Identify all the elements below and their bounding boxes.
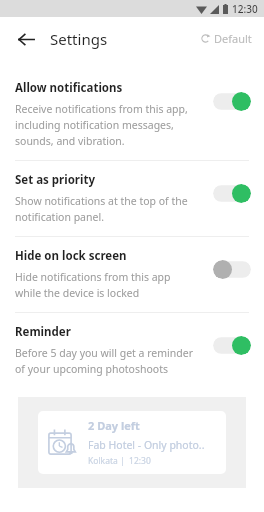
staticText: notification panel. xyxy=(15,210,104,224)
staticText: Hide notifications from this app xyxy=(15,270,171,284)
button[interactable]: Hide on lock screen xyxy=(0,237,264,312)
staticText: Settings xyxy=(50,29,108,49)
button[interactable]: 2 Day left xyxy=(38,411,226,474)
button[interactable]: On xyxy=(213,92,251,111)
button[interactable]: Set as priority xyxy=(0,161,264,236)
staticText: Allow notifications xyxy=(15,80,123,96)
staticText: Set as priority xyxy=(15,172,96,188)
button[interactable]: Allow notifications xyxy=(0,69,264,160)
staticText: including notification messages, xyxy=(15,118,174,132)
staticText: while the device is locked xyxy=(15,286,140,300)
staticText: Reminder xyxy=(15,324,71,340)
staticText: 2 Day left xyxy=(88,418,140,433)
button[interactable]: Back xyxy=(10,23,42,55)
staticText: 12:30 xyxy=(232,2,258,16)
staticText: Show notifications at the top of the xyxy=(15,194,188,208)
button[interactable]: On xyxy=(213,184,251,203)
staticText: Fab Hotel - Only photo.. xyxy=(88,438,205,452)
staticText: Before 5 day you will get a reminder xyxy=(15,346,193,360)
staticText: Default xyxy=(214,31,252,46)
staticText: Hide on lock screen xyxy=(15,248,127,264)
staticText: Kolkata | 12:30 xyxy=(88,455,151,467)
button[interactable]: Reminder xyxy=(0,313,264,388)
staticText: sounds, and vibration. xyxy=(15,134,125,148)
staticText: Receive notifications from this app, xyxy=(15,102,188,116)
button[interactable]: Off xyxy=(213,260,251,279)
staticText: of your upcoming photoshoots xyxy=(15,362,168,376)
button[interactable]: On xyxy=(213,336,251,355)
button[interactable]: Default xyxy=(197,27,256,50)
